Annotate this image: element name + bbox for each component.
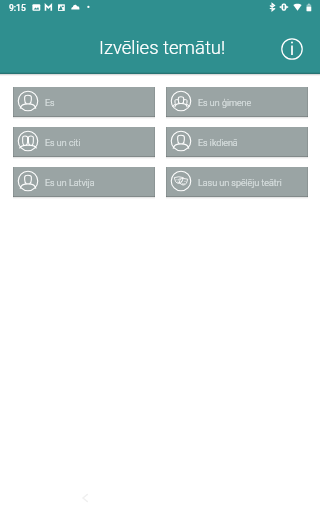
- button[interactable]: Es: [13, 87, 155, 117]
- staticText: Lasu un spēlēju teātri: [198, 178, 282, 189]
- staticText: Izvēlies temātu!: [99, 37, 226, 59]
- staticText: Es un ģimene: [198, 98, 252, 109]
- button[interactable]: Es un citi: [13, 127, 155, 157]
- staticText: Es un Latvija: [45, 178, 95, 189]
- button[interactable]: Info: [280, 37, 304, 61]
- staticText: Es un citi: [45, 138, 81, 149]
- staticText: Es ikdienā: [198, 138, 238, 149]
- staticText: Es: [45, 98, 55, 109]
- button[interactable]: Es un ģimene: [166, 87, 308, 117]
- staticText: 9:15: [9, 3, 26, 13]
- button[interactable]: Back: [79, 492, 91, 504]
- button[interactable]: Es ikdienā: [166, 127, 308, 157]
- button[interactable]: Es un Latvija: [13, 167, 155, 197]
- button[interactable]: Lasu un spēlēju teātri: [166, 167, 308, 197]
